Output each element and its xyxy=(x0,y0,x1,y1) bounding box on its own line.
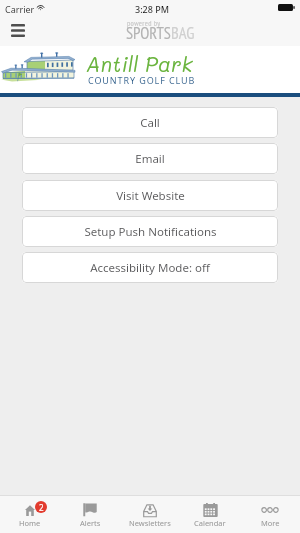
staticText: 2 xyxy=(39,502,44,513)
button[interactable]: Email xyxy=(22,143,278,174)
staticText: Setup Push Notifications xyxy=(84,224,217,240)
staticText: 3:28 PM xyxy=(135,3,169,15)
staticText: Calendar xyxy=(194,518,226,528)
staticText: Home xyxy=(19,518,41,528)
staticText: Email xyxy=(135,151,165,167)
button[interactable]: Calendar xyxy=(180,496,240,533)
button[interactable]: 2 xyxy=(0,496,60,533)
staticText: BAG xyxy=(171,22,195,43)
staticText: Call xyxy=(140,115,160,131)
button[interactable]: Newsletters xyxy=(120,496,180,533)
button[interactable]: Alerts xyxy=(60,496,120,533)
staticText: Accessibility Mode: off xyxy=(90,260,210,276)
staticText: More xyxy=(261,518,280,528)
staticText: Newsletters xyxy=(129,518,171,528)
button[interactable]: Menu xyxy=(4,16,32,44)
button[interactable]: Visit Website xyxy=(22,180,278,211)
staticText: Alerts xyxy=(80,518,101,528)
staticText: Carrier xyxy=(5,3,35,15)
staticText: SPORTS xyxy=(126,22,171,43)
staticText: COUNTRY GOLF CLUB xyxy=(88,74,196,86)
button[interactable]: Call xyxy=(22,107,278,138)
staticText: Visit Website xyxy=(116,188,185,204)
button[interactable]: Setup Push Notifications xyxy=(22,216,278,247)
staticText: Antill Park xyxy=(86,50,193,77)
staticText: powered by xyxy=(127,18,161,28)
button[interactable]: Accessibility Mode: off xyxy=(22,252,278,283)
button[interactable]: More xyxy=(240,496,300,533)
